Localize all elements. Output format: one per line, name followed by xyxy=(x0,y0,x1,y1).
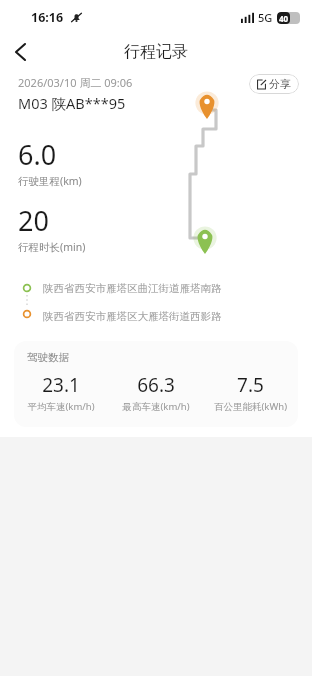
staticText: 66.3 xyxy=(137,372,175,398)
staticText: 最高车速(km/h) xyxy=(122,400,190,413)
staticText: 行程记录 xyxy=(124,42,188,62)
staticText: 驾驶数据 xyxy=(27,351,69,364)
staticText: 百公里能耗(kWh) xyxy=(214,400,287,413)
staticText: 7.5 xyxy=(237,372,264,398)
staticText: 行驶里程(km) xyxy=(18,174,82,188)
staticText: 平均车速(km/h) xyxy=(27,400,95,413)
staticText: 40 xyxy=(279,13,289,24)
staticText: 分享 xyxy=(269,77,291,91)
staticText: 行程时长(min) xyxy=(18,240,86,254)
button[interactable]: 陕西省西安市雁塔区曲江街道雁塔南路 xyxy=(43,280,312,297)
staticText: 陕西省西安市雁塔区曲江街道雁塔南路 xyxy=(43,282,222,295)
staticText: M03 陕AB***95 xyxy=(18,93,126,113)
staticText: 陕西省西安市雁塔区大雁塔街道西影路 xyxy=(43,310,222,323)
staticText: 2026/03/10 周二 09:06 xyxy=(18,75,133,90)
button[interactable]: Back xyxy=(0,34,40,70)
staticText: 6.0 xyxy=(18,136,57,173)
button[interactable]: 分享 xyxy=(249,74,299,94)
staticText: 20 xyxy=(18,202,49,239)
staticText: 23.1 xyxy=(42,372,80,398)
button[interactable]: 陕西省西安市雁塔区大雁塔街道西影路 xyxy=(43,308,312,325)
staticText: 16:16 xyxy=(31,9,64,26)
staticText: 5G xyxy=(258,10,273,25)
